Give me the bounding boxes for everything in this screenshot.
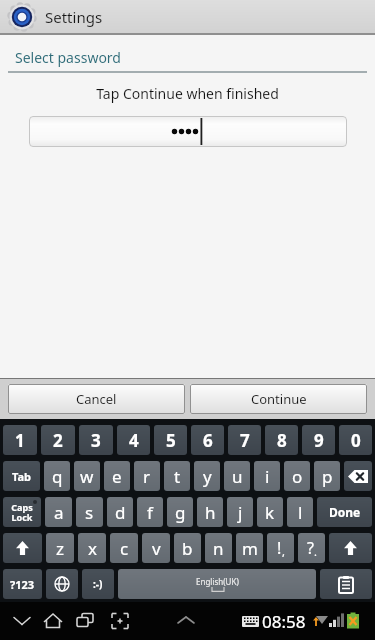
button[interactable]: ?123 <box>3 569 42 599</box>
staticText: Select password <box>15 48 121 67</box>
staticText: Settings <box>45 7 103 27</box>
staticText: a <box>54 501 64 524</box>
button[interactable]: b <box>174 533 201 563</box>
button[interactable]: c <box>110 533 138 563</box>
staticText: 6 <box>203 429 213 452</box>
button[interactable] <box>320 569 372 599</box>
button[interactable]: Tab <box>3 461 40 491</box>
staticText: x <box>88 537 97 560</box>
staticText: u <box>232 465 243 488</box>
staticText: 2 <box>53 429 63 452</box>
button[interactable] <box>75 602 150 640</box>
button[interactable]: 0 <box>339 425 372 455</box>
button[interactable]: Cancel <box>8 384 185 414</box>
button[interactable]: 3 <box>79 425 113 455</box>
staticText: 5 <box>166 429 176 452</box>
button[interactable]: i <box>254 461 280 491</box>
staticText: . <box>314 544 317 559</box>
button[interactable]: 1 <box>3 425 37 455</box>
button[interactable]: n <box>205 533 232 563</box>
button[interactable]: t <box>164 461 190 491</box>
staticText: g <box>175 501 186 524</box>
button[interactable]: 7 <box>228 425 261 455</box>
button[interactable]: h <box>197 497 223 527</box>
button[interactable]: d <box>107 497 133 527</box>
staticText: m <box>242 537 258 560</box>
button[interactable]: s <box>76 497 103 527</box>
staticText: :-) <box>93 577 103 591</box>
button[interactable]: Continue <box>190 384 367 414</box>
button[interactable]: ? <box>298 533 325 563</box>
button[interactable]: k <box>257 497 283 527</box>
button[interactable] <box>329 533 372 563</box>
staticText: c <box>120 537 129 560</box>
button[interactable]: ! <box>267 533 294 563</box>
button[interactable]: a <box>45 497 72 527</box>
button[interactable]: r <box>134 461 160 491</box>
button[interactable]: 5 <box>154 425 187 455</box>
staticText: o <box>292 465 303 488</box>
staticText: p <box>322 465 333 488</box>
button[interactable]: 4 <box>117 425 150 455</box>
staticText: s <box>85 501 94 524</box>
button[interactable]: z <box>46 533 74 563</box>
staticText: i <box>265 465 270 488</box>
button[interactable] <box>0 602 75 640</box>
button[interactable]: o <box>284 461 310 491</box>
staticText: y <box>203 465 212 488</box>
button[interactable]: 8 <box>265 425 298 455</box>
staticText: r <box>143 465 151 488</box>
staticText: 9 <box>314 429 324 452</box>
button[interactable]: g <box>167 497 193 527</box>
staticText: Continue <box>251 390 307 408</box>
button[interactable]: :-) <box>82 569 114 599</box>
button[interactable]: j <box>227 497 253 527</box>
staticText: , <box>282 544 285 559</box>
button[interactable]: w <box>74 461 100 491</box>
button[interactable] <box>344 461 372 491</box>
button[interactable]: x <box>78 533 106 563</box>
button[interactable]: 9 <box>302 425 335 455</box>
staticText: f <box>147 501 153 524</box>
staticText: ! <box>277 537 282 559</box>
button[interactable]: English(UK) <box>118 569 316 599</box>
staticText: 7 <box>240 429 250 452</box>
staticText: Caps Lock <box>11 501 33 523</box>
staticText: Done <box>329 504 361 520</box>
button[interactable]: p <box>314 461 340 491</box>
staticText: ?123 <box>10 577 35 592</box>
button[interactable] <box>225 602 300 640</box>
staticText: 4 <box>129 429 139 452</box>
button[interactable]: m <box>236 533 263 563</box>
staticText: Tap Continue when finished <box>0 84 375 103</box>
staticText: 08:58 <box>262 610 306 633</box>
button[interactable]: Caps Lock <box>3 497 41 527</box>
button[interactable]: Done <box>317 497 372 527</box>
staticText: h <box>205 501 216 524</box>
staticText: z <box>56 537 64 560</box>
button[interactable]: f <box>137 497 163 527</box>
button[interactable]: 2 <box>41 425 75 455</box>
button[interactable] <box>46 569 78 599</box>
staticText: 8 <box>277 429 287 452</box>
button[interactable]: q <box>44 461 70 491</box>
button[interactable] <box>300 602 375 640</box>
button[interactable]: u <box>224 461 250 491</box>
button[interactable] <box>3 533 42 563</box>
staticText: 3 <box>91 429 101 452</box>
staticText: Cancel <box>76 390 117 408</box>
staticText: l <box>298 501 303 524</box>
button[interactable] <box>29 116 347 147</box>
button[interactable]: l <box>287 497 313 527</box>
button[interactable] <box>150 602 225 640</box>
staticText: n <box>213 537 224 560</box>
button[interactable]: y <box>194 461 220 491</box>
button[interactable]: 6 <box>191 425 224 455</box>
staticText: v <box>152 537 161 560</box>
staticText: ? <box>307 537 314 559</box>
staticText: w <box>80 465 94 488</box>
button[interactable]: e <box>104 461 130 491</box>
staticText: j <box>238 501 243 524</box>
button[interactable]: v <box>142 533 170 563</box>
staticText: b <box>182 537 193 560</box>
